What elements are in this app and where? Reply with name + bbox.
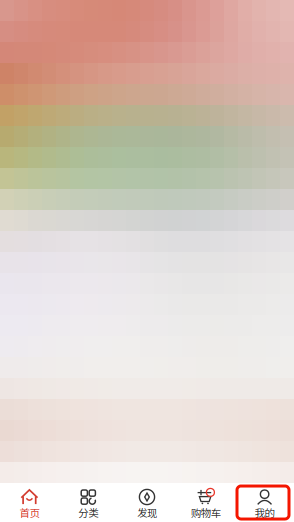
staticText: 发现 [137, 505, 157, 520]
button[interactable]: 购物车 [176, 483, 235, 522]
staticText: 首页 [19, 505, 39, 520]
button[interactable]: 首页 [0, 483, 59, 522]
button[interactable]: 发现 [118, 483, 176, 522]
staticText: 我的 [255, 505, 275, 520]
button[interactable]: 我的 [235, 483, 294, 522]
button[interactable]: 分类 [59, 483, 118, 522]
staticText: 购物车 [191, 505, 221, 520]
staticText: 分类 [78, 505, 98, 520]
